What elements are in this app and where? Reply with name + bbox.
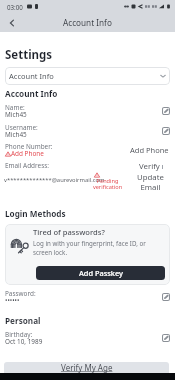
staticText: •••••• bbox=[5, 296, 20, 305]
staticText: Mich45 bbox=[5, 110, 27, 119]
staticText: Birthday: bbox=[5, 330, 33, 339]
staticText: Personal bbox=[5, 315, 41, 326]
button[interactable]: Add Phone bbox=[130, 145, 170, 155]
staticText: Tired of passwords? bbox=[33, 227, 105, 237]
button[interactable]: Verify bbox=[139, 161, 160, 172]
button[interactable]: Edit bbox=[162, 293, 170, 301]
staticText: Verify My Age bbox=[61, 362, 113, 373]
staticText: Update Email bbox=[137, 172, 164, 191]
button[interactable]: Back bbox=[4, 15, 20, 31]
staticText: Account Info bbox=[5, 88, 58, 99]
button[interactable]: Account Info bbox=[5, 67, 170, 85]
staticText: Add Phone bbox=[11, 149, 44, 158]
staticText: Account Info bbox=[9, 71, 160, 81]
staticText: Phone Number: bbox=[5, 142, 53, 151]
staticText: Add Phone bbox=[130, 145, 169, 155]
button[interactable]: Update Email bbox=[137, 172, 164, 191]
button[interactable]: Edit bbox=[162, 334, 170, 342]
staticText: Verify bbox=[139, 161, 160, 172]
button[interactable]: Edit bbox=[162, 107, 170, 115]
button[interactable]: Verify My Age bbox=[4, 362, 169, 373]
staticText: Oct 10, 1989 bbox=[5, 337, 43, 346]
staticText: Pending verification bbox=[89, 177, 126, 191]
button[interactable]: Edit bbox=[162, 127, 170, 135]
staticText: Log in with your fingerprint, face ID, o… bbox=[33, 239, 165, 257]
staticText: Name: bbox=[5, 103, 25, 112]
staticText: Password: bbox=[5, 289, 36, 298]
staticText: Account Info bbox=[63, 17, 112, 28]
staticText: 03:00 bbox=[7, 3, 23, 11]
staticText: Username: bbox=[5, 123, 38, 132]
staticText: v**************@aurevoirmail.com bbox=[4, 176, 105, 184]
staticText: Mich45 bbox=[5, 130, 27, 139]
staticText: Login Methods bbox=[5, 208, 66, 219]
button[interactable]: Add Passkey bbox=[36, 266, 165, 280]
staticText: Email Address: bbox=[5, 161, 49, 170]
staticText: Add Passkey bbox=[79, 268, 123, 278]
staticText: Settings bbox=[5, 47, 53, 63]
